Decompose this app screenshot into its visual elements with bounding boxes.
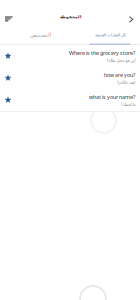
staticText: what is your name? bbox=[89, 93, 135, 100]
staticText: كيف حالكم؟ bbox=[116, 80, 135, 84]
button[interactable]: Where is the grocery store? bbox=[0, 45, 140, 67]
button[interactable]: Filter bbox=[0, 8, 20, 25]
button[interactable]: كل العبارات القديمة bbox=[80, 26, 140, 45]
staticText: التصنيفي bbox=[29, 32, 50, 38]
staticText: Where is the grocery store? bbox=[69, 49, 135, 56]
staticText: كل العبارات القديمة bbox=[94, 33, 125, 37]
staticText: how are you? bbox=[104, 71, 135, 78]
staticText: أين هو محل بقالة؟ bbox=[106, 58, 135, 62]
button[interactable]: what is your name? bbox=[0, 89, 140, 111]
staticText: ما اسمك؟ bbox=[120, 102, 135, 106]
button[interactable]: how are you? bbox=[0, 67, 140, 89]
staticText: المحفوظة bbox=[59, 15, 80, 19]
button[interactable]: التصنيفي bbox=[0, 26, 80, 45]
button[interactable]: Next bbox=[122, 8, 140, 26]
